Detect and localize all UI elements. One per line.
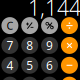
staticText: C — [6, 18, 13, 33]
button[interactable]: Minus — [61, 57, 78, 74]
button[interactable]: 8 — [21, 37, 38, 54]
staticText: 6 — [46, 57, 53, 73]
button[interactable]: 9 — [41, 37, 58, 54]
button[interactable]: Plus minus — [21, 17, 38, 34]
button[interactable]: Clear — [1, 17, 18, 34]
staticText: 1 — [6, 77, 13, 80]
button[interactable]: Percent — [41, 17, 58, 34]
button[interactable]: 1 — [1, 77, 18, 80]
button[interactable]: 2 — [21, 77, 38, 80]
button[interactable]: 3 — [41, 77, 58, 80]
button[interactable]: 5 — [21, 57, 38, 74]
staticText: 1,144 — [28, 0, 80, 22]
button[interactable]: Plus — [61, 77, 78, 80]
staticText: 7 — [6, 37, 13, 53]
staticText: 5 — [26, 57, 33, 73]
button[interactable]: 4 — [1, 57, 18, 74]
staticText: 4 — [6, 57, 13, 73]
button[interactable]: Multiply — [61, 37, 78, 54]
button[interactable]: Divide — [61, 17, 78, 34]
button[interactable]: 7 — [1, 37, 18, 54]
staticText: 2 — [26, 77, 33, 80]
button[interactable]: 6 — [41, 57, 58, 74]
staticText: 8 — [26, 37, 33, 53]
staticText: 3 — [46, 77, 53, 80]
staticText: 9 — [46, 37, 53, 53]
